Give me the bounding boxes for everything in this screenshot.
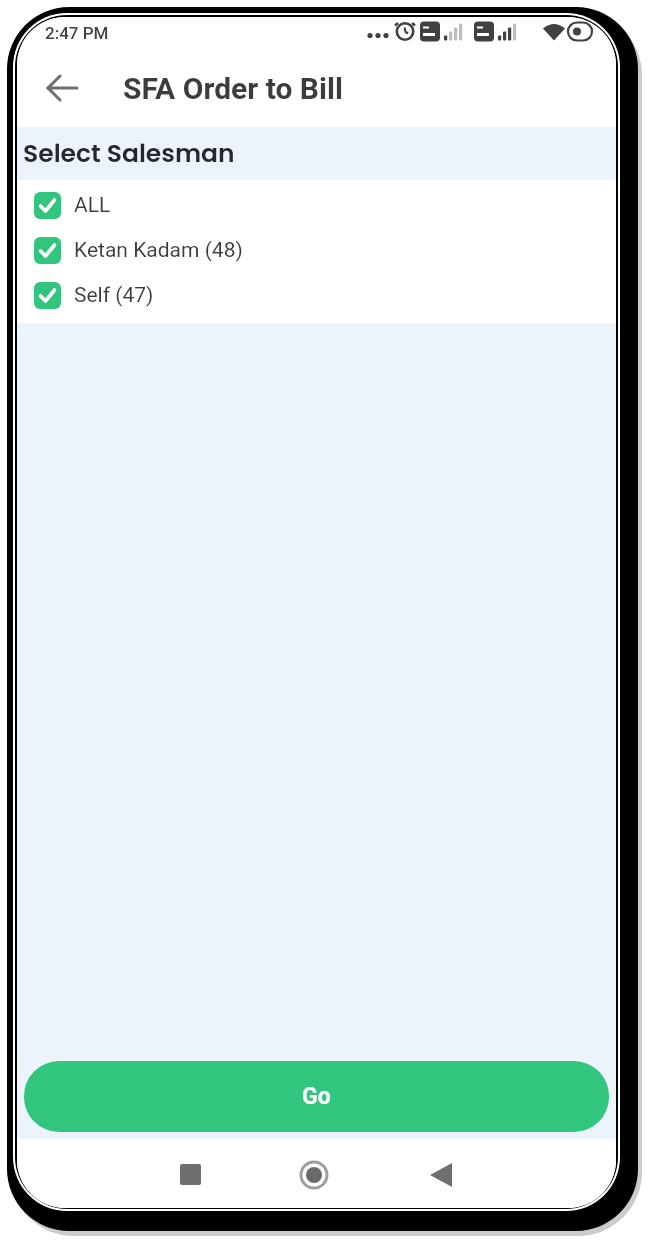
- button[interactable]: Ketan Kadam (48): [17, 228, 616, 273]
- staticText: Ketan Kadam (48): [74, 238, 243, 263]
- button[interactable]: [416, 1139, 616, 1208]
- button[interactable]: Go: [24, 1061, 609, 1132]
- button[interactable]: [216, 1139, 416, 1208]
- staticText: Go: [302, 1083, 331, 1110]
- button[interactable]: ALL: [17, 183, 616, 228]
- button[interactable]: [46, 71, 80, 105]
- button[interactable]: Self (47): [17, 273, 616, 318]
- staticText: 2:47 PM: [45, 23, 109, 43]
- staticText: Select Salesman: [23, 136, 235, 171]
- staticText: ALL: [74, 193, 111, 218]
- button[interactable]: [17, 1139, 216, 1208]
- staticText: Self (47): [74, 283, 154, 308]
- staticText: SFA Order to Bill: [123, 71, 343, 106]
